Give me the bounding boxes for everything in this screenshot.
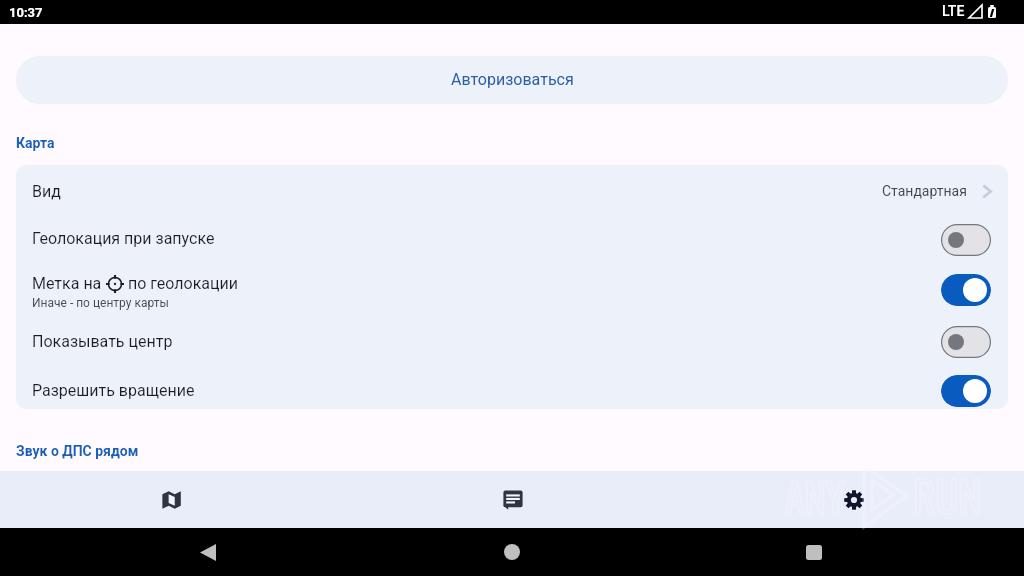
button[interactable]: Разрешить вращение (16, 361, 1008, 409)
staticText: Авторизоваться (451, 70, 574, 89)
staticText: Звук о ДПС рядом (16, 443, 139, 459)
staticText: Геолокация при запуске (32, 229, 215, 248)
button[interactable]: Map (0, 471, 342, 528)
staticText: Разрешить вращение (32, 381, 195, 400)
staticText: ANY (785, 466, 846, 525)
staticText: по геолокации (124, 274, 239, 293)
button[interactable]: Показывать центр (16, 313, 1008, 361)
button[interactable]: Settings (683, 471, 1024, 528)
staticText: Показывать центр (32, 332, 173, 351)
staticText: RUN (913, 463, 982, 527)
staticText: Стандартная (882, 183, 967, 199)
button[interactable]: Back (184, 528, 232, 576)
staticText: Иначе - по центру карты (32, 296, 169, 310)
staticText: LTE (942, 3, 965, 19)
button[interactable]: Вид (16, 165, 1008, 213)
button[interactable]: Enabled (941, 274, 991, 306)
staticText: 10:37 (9, 5, 43, 20)
staticText: Вид (32, 182, 61, 201)
button[interactable]: Enabled (941, 375, 991, 407)
button[interactable]: Disabled (941, 224, 991, 256)
staticText: Метка на (32, 274, 106, 293)
button[interactable]: Disabled (941, 326, 991, 358)
button[interactable]: Recents (790, 528, 838, 576)
button[interactable]: Chat (342, 471, 683, 528)
button[interactable]: Home (488, 528, 536, 576)
staticText: Карта (16, 135, 55, 151)
button[interactable]: Метка на (16, 261, 1008, 313)
button[interactable]: Авторизоваться (16, 56, 1008, 104)
button[interactable]: Геолокация при запуске (16, 213, 1008, 261)
